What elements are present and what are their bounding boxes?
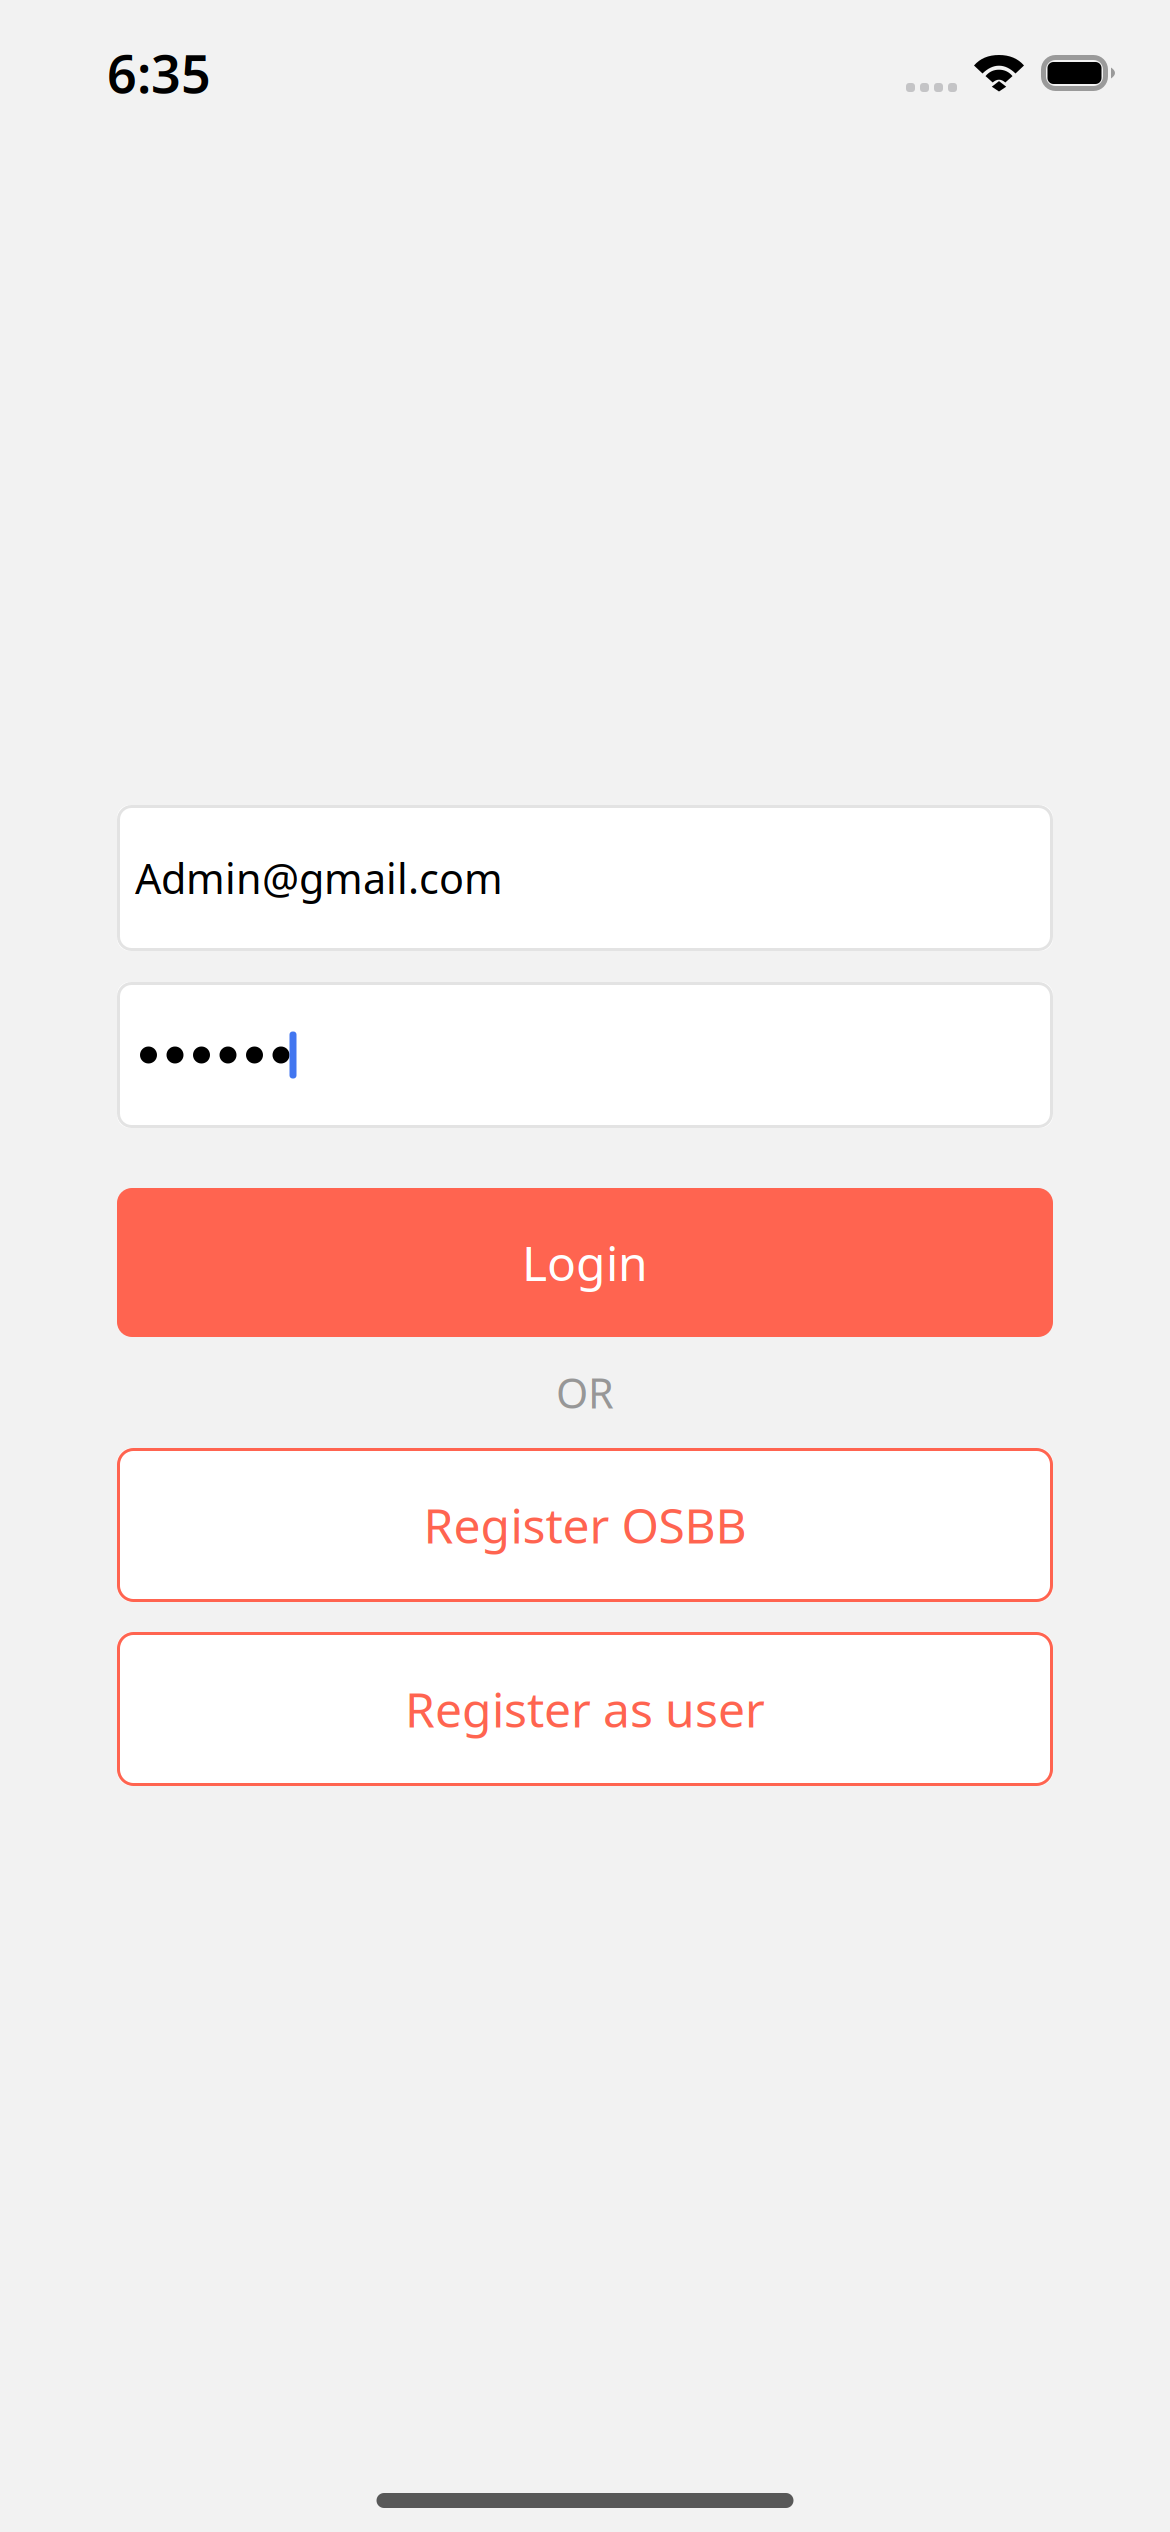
button[interactable]: Register OSBB	[117, 1448, 1053, 1602]
staticText: Register as user	[405, 1677, 765, 1741]
button[interactable]: Email, Admin@gmail.com	[117, 805, 1053, 951]
button[interactable]: Login	[117, 1188, 1053, 1337]
staticText: OR	[556, 1365, 614, 1420]
staticText: 6:35	[107, 38, 211, 108]
staticText: Admin@gmail.com	[135, 851, 503, 905]
button[interactable]: Password	[117, 982, 1053, 1128]
staticText: Register OSBB	[423, 1493, 746, 1557]
staticText: Login	[522, 1231, 648, 1294]
button[interactable]: Register as user	[117, 1632, 1053, 1786]
